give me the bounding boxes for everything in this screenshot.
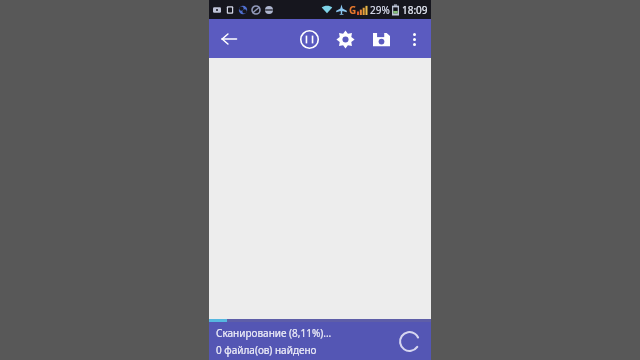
staticText: 18:09: [402, 3, 428, 17]
staticText: G: [349, 3, 357, 17]
staticText: 0 файла(ов) найдено: [216, 343, 317, 357]
staticText: Сканирование (8,11%)...: [216, 326, 332, 340]
button[interactable]: Back: [209, 19, 249, 58]
button[interactable]: Pause: [291, 21, 327, 57]
button[interactable]: More options: [399, 24, 429, 54]
button[interactable]: Settings: [327, 21, 363, 57]
staticText: 29%: [370, 3, 390, 17]
button[interactable]: Save: [363, 21, 399, 57]
